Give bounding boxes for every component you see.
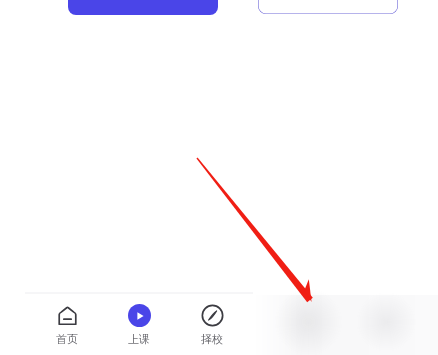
staticText: 首页	[56, 332, 78, 346]
other: 首页	[56, 304, 79, 327]
staticText: 上课	[128, 332, 150, 346]
button[interactable]: 择校	[181, 293, 243, 355]
other: 择校	[201, 304, 224, 327]
button[interactable]: 上课	[108, 293, 170, 355]
other: 上课	[128, 304, 151, 327]
button[interactable]	[68, 0, 218, 15]
staticText: 择校	[201, 332, 223, 346]
button[interactable]	[258, 0, 398, 14]
button[interactable]: 首页	[36, 293, 98, 355]
